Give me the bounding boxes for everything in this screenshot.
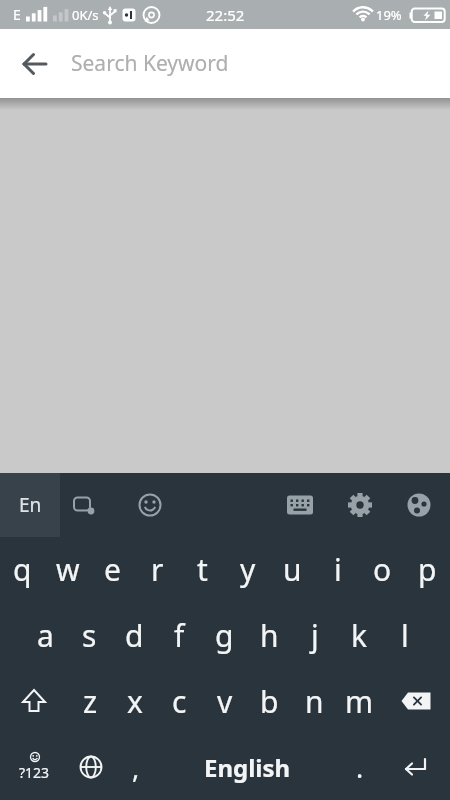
button[interactable] [382, 668, 450, 734]
staticText: E [13, 5, 21, 24]
staticText: f [174, 615, 185, 656]
button[interactable]: q [0, 537, 45, 602]
staticText: 22:52 [206, 5, 245, 25]
button[interactable]: c [157, 668, 202, 734]
staticText: English [204, 751, 291, 784]
button[interactable]: j [292, 602, 337, 668]
staticText: Search Keyword [71, 49, 229, 78]
button[interactable] [126, 481, 174, 529]
staticText: p [418, 549, 437, 590]
button[interactable]: x [112, 668, 157, 734]
button[interactable]: b [247, 668, 292, 734]
button[interactable]: l [382, 602, 427, 668]
staticText: , [132, 749, 140, 786]
staticText: o [373, 549, 392, 590]
button[interactable]: f [157, 602, 202, 668]
staticText: w [56, 549, 80, 590]
staticText: k [351, 615, 368, 656]
button[interactable]: u [270, 537, 315, 602]
staticText: . [356, 749, 364, 786]
staticText: n [305, 681, 324, 722]
button[interactable]: English [158, 734, 337, 800]
staticText: j [311, 615, 319, 656]
button[interactable] [382, 734, 450, 800]
staticText: b [260, 681, 279, 722]
staticText: x [127, 681, 143, 722]
button[interactable]: g [202, 602, 247, 668]
button[interactable]: k [337, 602, 382, 668]
button[interactable]: w [45, 537, 90, 602]
button[interactable]: v [202, 668, 247, 734]
staticText: h [260, 615, 279, 656]
staticText: e [104, 549, 121, 590]
button[interactable] [276, 481, 324, 529]
button[interactable]: r [135, 537, 180, 602]
button[interactable] [395, 481, 443, 529]
button[interactable]: . [337, 734, 382, 800]
button[interactable]: m [337, 668, 382, 734]
staticText: i [334, 549, 342, 590]
staticText: d [125, 615, 144, 656]
staticText: g [215, 615, 234, 656]
button[interactable]: y [225, 537, 270, 602]
staticText: u [283, 549, 302, 590]
staticText: z [83, 681, 98, 722]
staticText: 0K/s [72, 6, 99, 24]
button[interactable] [336, 481, 384, 529]
button[interactable]: d [112, 602, 157, 668]
staticText: v [217, 681, 233, 722]
staticText: s [82, 615, 97, 656]
staticText: r [151, 549, 164, 590]
button[interactable]: t [180, 537, 225, 602]
button[interactable] [11, 40, 59, 88]
staticText: c [172, 681, 187, 722]
button[interactable]: z [68, 668, 112, 734]
button[interactable]: a [23, 602, 67, 668]
button[interactable]: En [0, 473, 60, 537]
button[interactable] [0, 668, 68, 734]
button[interactable]: h [247, 602, 292, 668]
staticText: q [13, 549, 32, 590]
button[interactable]: n [292, 668, 337, 734]
staticText: En [19, 492, 42, 518]
button[interactable]: ?123 [0, 734, 68, 800]
button[interactable]: s [67, 602, 112, 668]
button[interactable]: e [90, 537, 135, 602]
button[interactable]: , [113, 734, 158, 800]
staticText: l [401, 615, 409, 656]
button[interactable] [60, 481, 108, 529]
staticText: t [197, 549, 208, 590]
button[interactable] [68, 734, 113, 800]
button[interactable]: o [360, 537, 405, 602]
button[interactable]: p [405, 537, 450, 602]
button[interactable]: i [315, 537, 360, 602]
staticText: m [345, 681, 374, 722]
staticText: a [37, 615, 54, 656]
staticText: y [240, 549, 256, 590]
staticText: ?123 [19, 763, 50, 782]
staticText: 19% [376, 6, 402, 24]
